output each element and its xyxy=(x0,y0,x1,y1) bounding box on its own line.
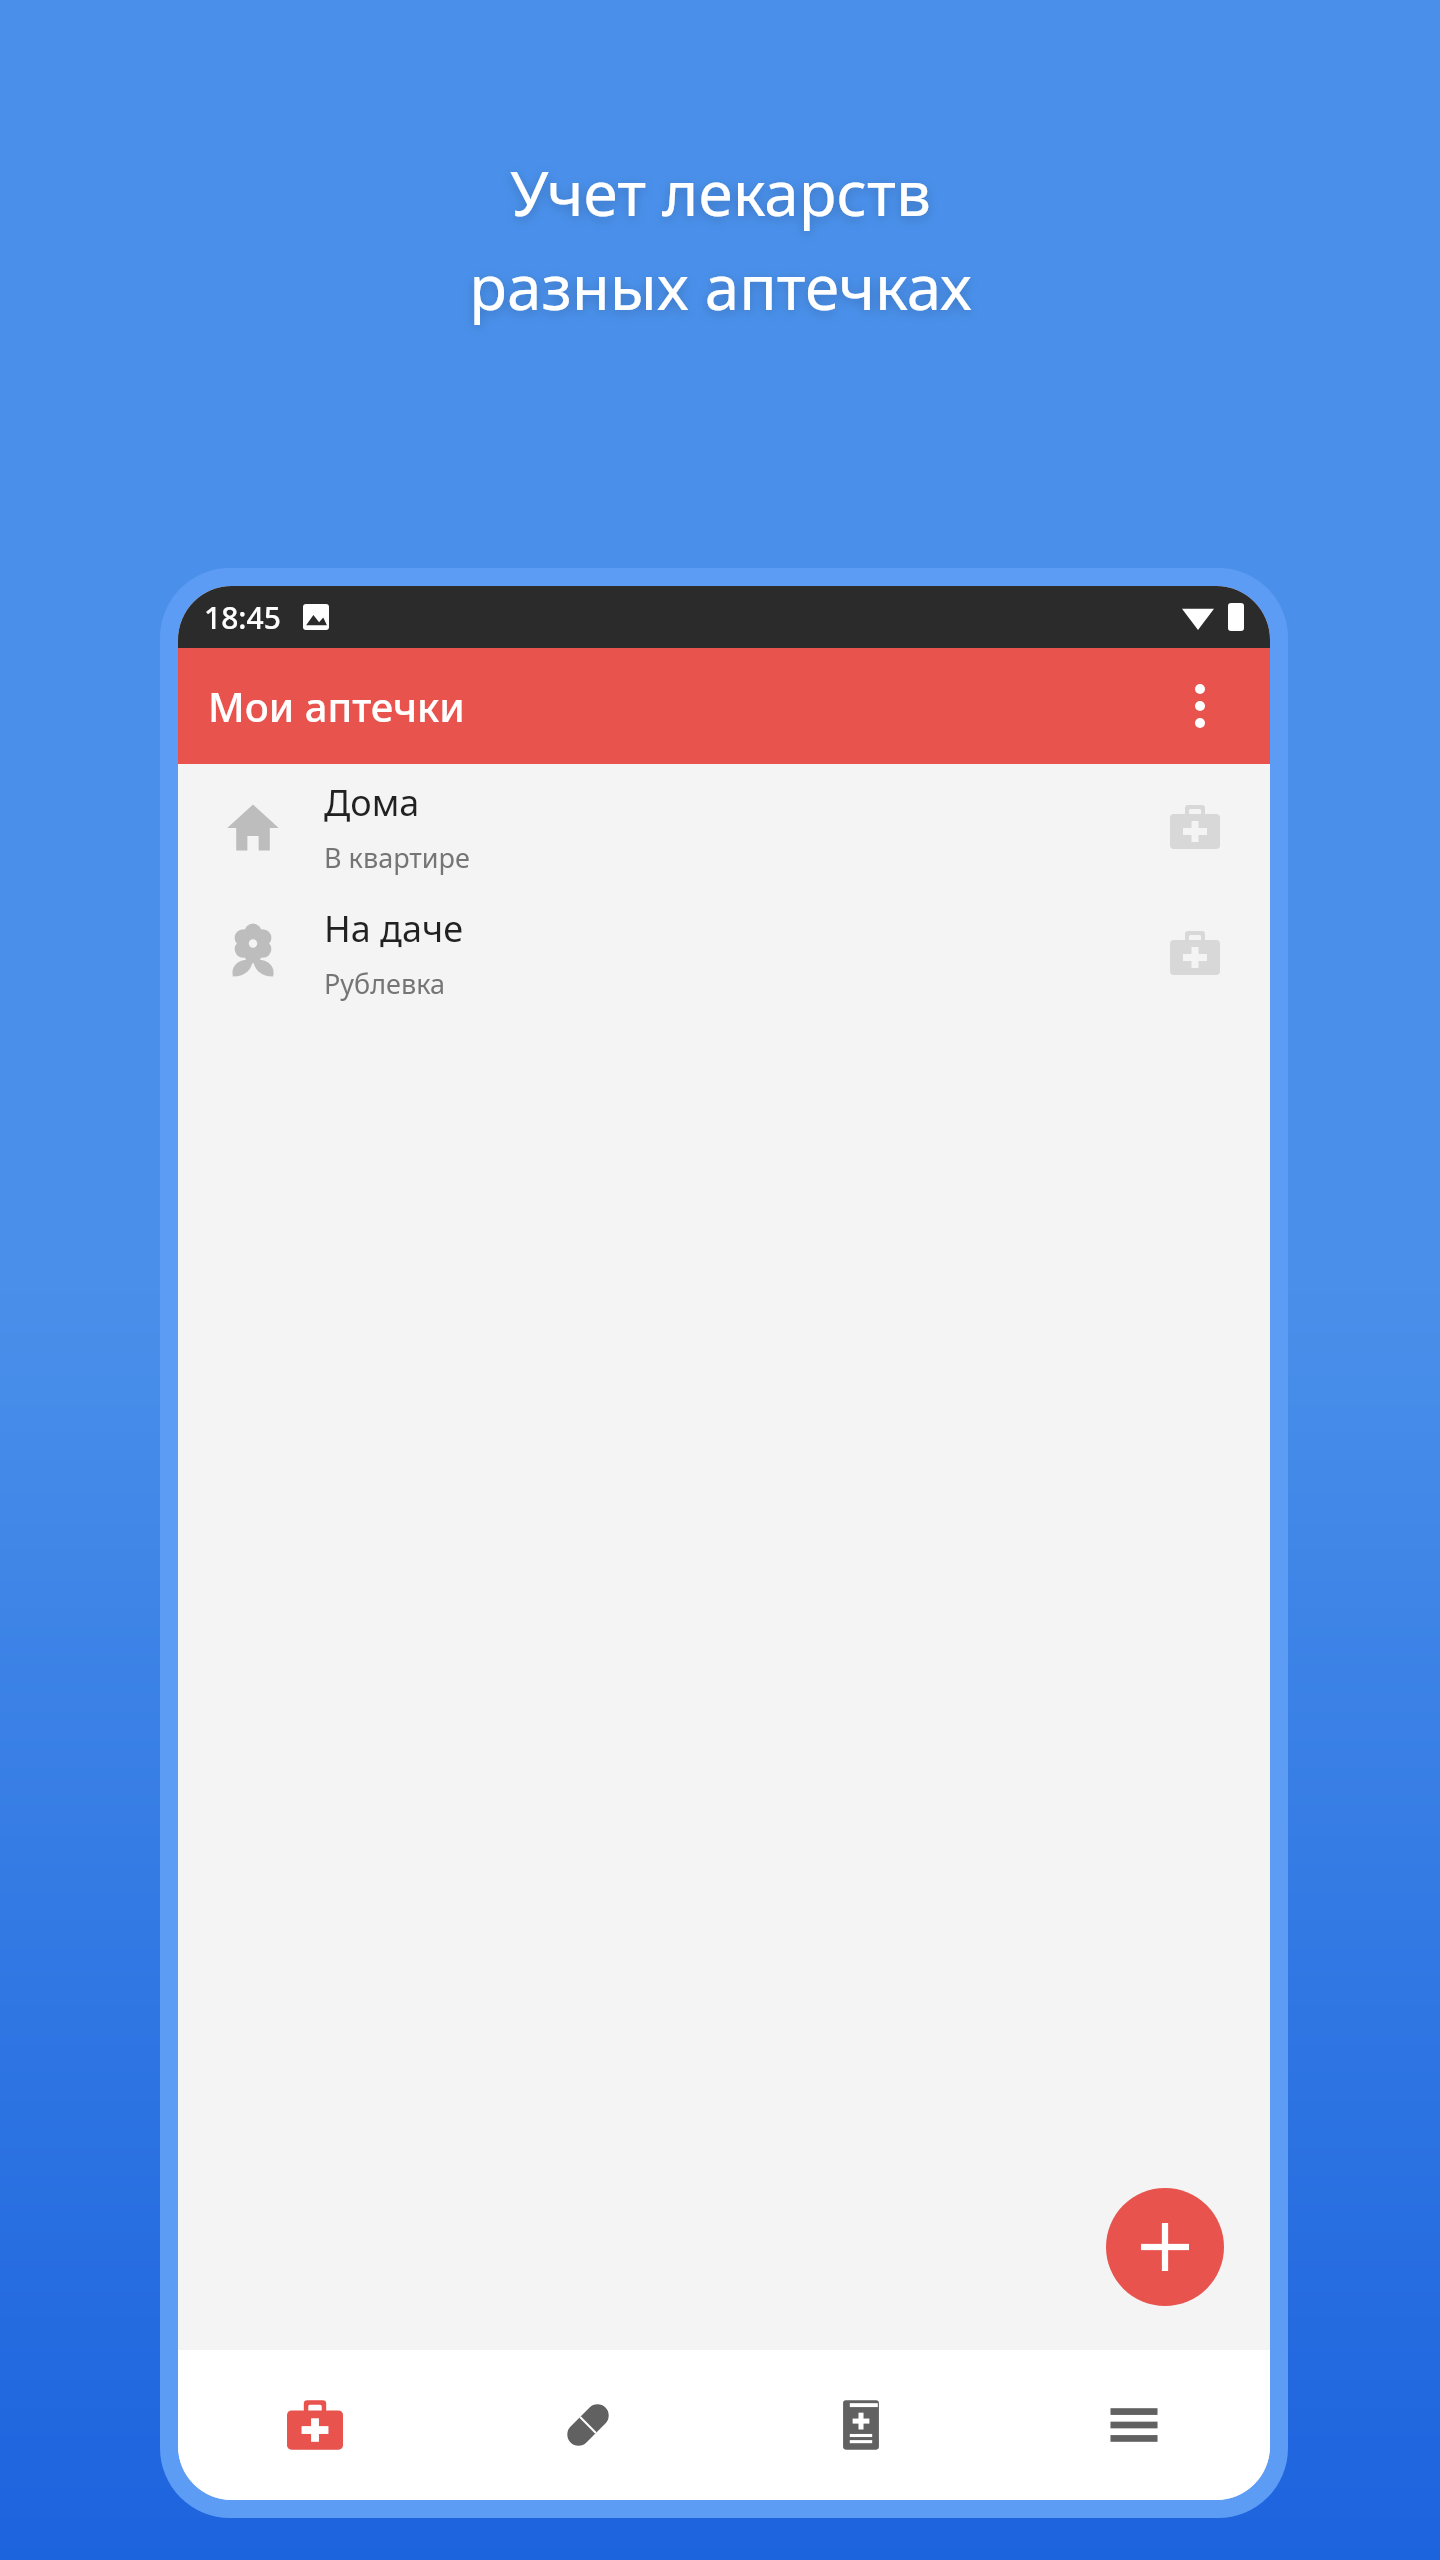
button[interactable]: На даче xyxy=(178,890,1270,1016)
button[interactable]: My kits xyxy=(178,2350,451,2500)
button[interactable]: Add medicine xyxy=(1160,918,1230,988)
button[interactable]: Add medicine xyxy=(1160,792,1230,862)
button[interactable]: Reference xyxy=(724,2350,997,2500)
staticText: 18:45 xyxy=(204,597,281,638)
staticText: Учет лекарств xyxy=(510,150,931,234)
staticText: В квартире xyxy=(324,839,470,876)
button[interactable]: More options xyxy=(1160,666,1240,746)
staticText: Мои аптечки xyxy=(208,679,465,733)
staticText: На даче xyxy=(324,904,464,953)
staticText: Рублевка xyxy=(324,965,445,1002)
staticText: Дома xyxy=(324,778,420,827)
staticText: разных аптечках xyxy=(469,244,972,328)
button[interactable]: Дома xyxy=(178,764,1270,890)
button[interactable]: Menu xyxy=(997,2350,1270,2500)
button[interactable]: Add xyxy=(1106,2188,1224,2306)
button[interactable]: Medicines xyxy=(451,2350,724,2500)
